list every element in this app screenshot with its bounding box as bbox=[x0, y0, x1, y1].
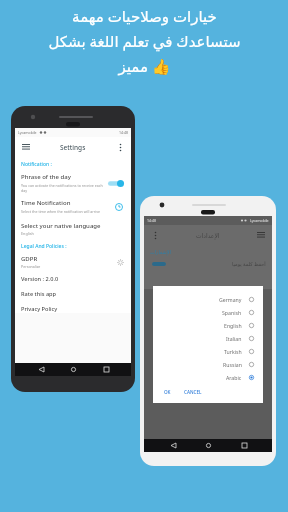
button[interactable]: Spanish bbox=[153, 306, 263, 319]
button[interactable]: Arabic bbox=[153, 371, 263, 384]
button[interactable]: Toggle phrase of the day bbox=[107, 178, 125, 188]
button[interactable]: Toggle daily phrase bbox=[150, 259, 266, 269]
staticText: Germany bbox=[219, 296, 242, 303]
button[interactable]: Phrase of the day bbox=[21, 173, 125, 193]
button[interactable]: Recent apps bbox=[99, 363, 113, 376]
button[interactable]: Pick time bbox=[113, 201, 125, 213]
button[interactable]: Italian bbox=[153, 332, 263, 345]
staticText: 14:48 bbox=[119, 130, 128, 135]
button[interactable]: Back bbox=[166, 439, 180, 452]
staticText: Turkish bbox=[224, 348, 242, 355]
button[interactable]: Select your native language bbox=[21, 222, 125, 236]
button[interactable]: More options bbox=[149, 229, 161, 241]
staticText: You can activate the notifications to re… bbox=[21, 183, 107, 193]
staticText: Arabic bbox=[226, 374, 242, 381]
staticText: Spanish bbox=[222, 309, 242, 316]
button[interactable]: Germany bbox=[153, 293, 263, 306]
button[interactable]: Russian bbox=[153, 358, 263, 371]
staticText: Lycamobile bbox=[250, 218, 269, 223]
button[interactable]: English bbox=[153, 319, 263, 332]
staticText: Italian bbox=[226, 335, 242, 342]
staticText: Legal And Policies : bbox=[21, 243, 67, 250]
button[interactable]: More options bbox=[114, 141, 126, 153]
button[interactable]: Time Notification bbox=[21, 199, 125, 214]
staticText: Lycamobile bbox=[18, 130, 37, 135]
button[interactable]: OK bbox=[162, 388, 173, 396]
staticText: English bbox=[224, 322, 242, 329]
staticText: Select the time when the notification wi… bbox=[21, 209, 101, 214]
button[interactable]: Home bbox=[66, 363, 80, 376]
button[interactable]: CANCEL bbox=[182, 388, 204, 396]
button[interactable]: GDPR settings bbox=[115, 257, 125, 267]
staticText: OK bbox=[164, 389, 171, 395]
staticText: Time Notification bbox=[21, 199, 71, 207]
button[interactable]: Turkish bbox=[153, 345, 263, 358]
staticText: Personalize bbox=[21, 264, 41, 269]
staticText: Russian bbox=[223, 361, 242, 368]
button[interactable]: GDPR bbox=[21, 255, 125, 269]
staticText: الإعدادات bbox=[196, 232, 220, 239]
button[interactable]: Home bbox=[201, 439, 215, 452]
staticText: مميز 👍 bbox=[118, 56, 171, 76]
button[interactable]: Open navigation menu bbox=[20, 141, 32, 153]
button[interactable]: Privacy Policy bbox=[21, 305, 58, 313]
staticText: خيارات وصلاحيات مهمة bbox=[72, 6, 217, 26]
staticText: أحفظ كلمة يوميا bbox=[232, 261, 266, 268]
button[interactable]: Back bbox=[34, 363, 48, 376]
staticText: GDPR bbox=[21, 255, 38, 263]
staticText: Select your native language bbox=[21, 222, 101, 230]
staticText: الإشعارات bbox=[150, 249, 171, 255]
button[interactable]: Open navigation menu bbox=[255, 229, 267, 241]
staticText: Phrase of the day bbox=[21, 173, 71, 181]
staticText: ستساعدك في تعلم اللغة بشكل bbox=[48, 31, 241, 51]
button[interactable]: Version : 2.0.0 bbox=[21, 275, 59, 283]
button[interactable]: Recent apps bbox=[237, 439, 251, 452]
staticText: Notification : bbox=[21, 161, 52, 168]
staticText: CANCEL bbox=[184, 389, 202, 395]
staticText: 14:48 bbox=[147, 218, 156, 223]
staticText: Settings bbox=[60, 143, 86, 152]
button[interactable]: Rate this app bbox=[21, 290, 57, 298]
staticText: English bbox=[21, 231, 34, 236]
button[interactable]: Toggle daily phrase bbox=[150, 259, 168, 269]
